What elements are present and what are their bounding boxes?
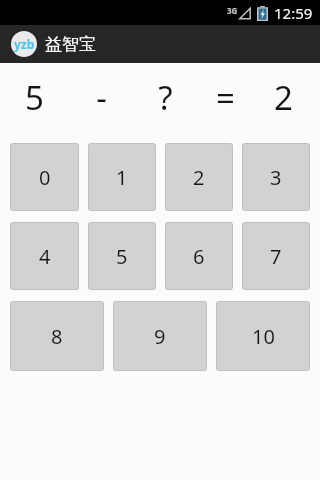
button[interactable]: 0 [10,143,79,211]
staticText: 12:59 [274,3,313,23]
staticText: 5 [25,75,44,120]
button[interactable]: 2 [165,143,233,211]
other: Battery charging [257,6,268,21]
staticText: 6 [193,243,205,270]
button[interactable]: 1 [88,143,156,211]
staticText: 2 [274,75,293,120]
staticText: - [96,75,107,120]
button[interactable]: 9 [113,301,207,371]
staticText: 7 [270,243,282,270]
button[interactable]: 7 [242,222,310,290]
button[interactable]: 3 [242,143,310,211]
staticText: 8 [51,323,63,350]
button[interactable]: 10 [216,301,310,371]
staticText: = [216,75,235,120]
button[interactable]: 6 [165,222,233,290]
other: Signal strength [239,7,251,20]
staticText: 2 [193,164,205,191]
staticText: 10 [252,323,275,350]
button[interactable]: App logo yzb [11,31,37,57]
staticText: 4 [39,243,51,270]
staticText: 5 [116,243,128,270]
staticText: ? [158,75,173,120]
button[interactable]: 8 [10,301,104,371]
button[interactable]: 4 [10,222,79,290]
staticText: 9 [154,323,166,350]
staticText: 0 [39,164,51,191]
button[interactable]: 5 [88,222,156,290]
staticText: 3G [227,5,238,16]
staticText: yzb [14,36,35,52]
staticText: 益智宝 [45,34,96,55]
staticText: 1 [116,164,128,191]
staticText: 3 [270,164,282,191]
